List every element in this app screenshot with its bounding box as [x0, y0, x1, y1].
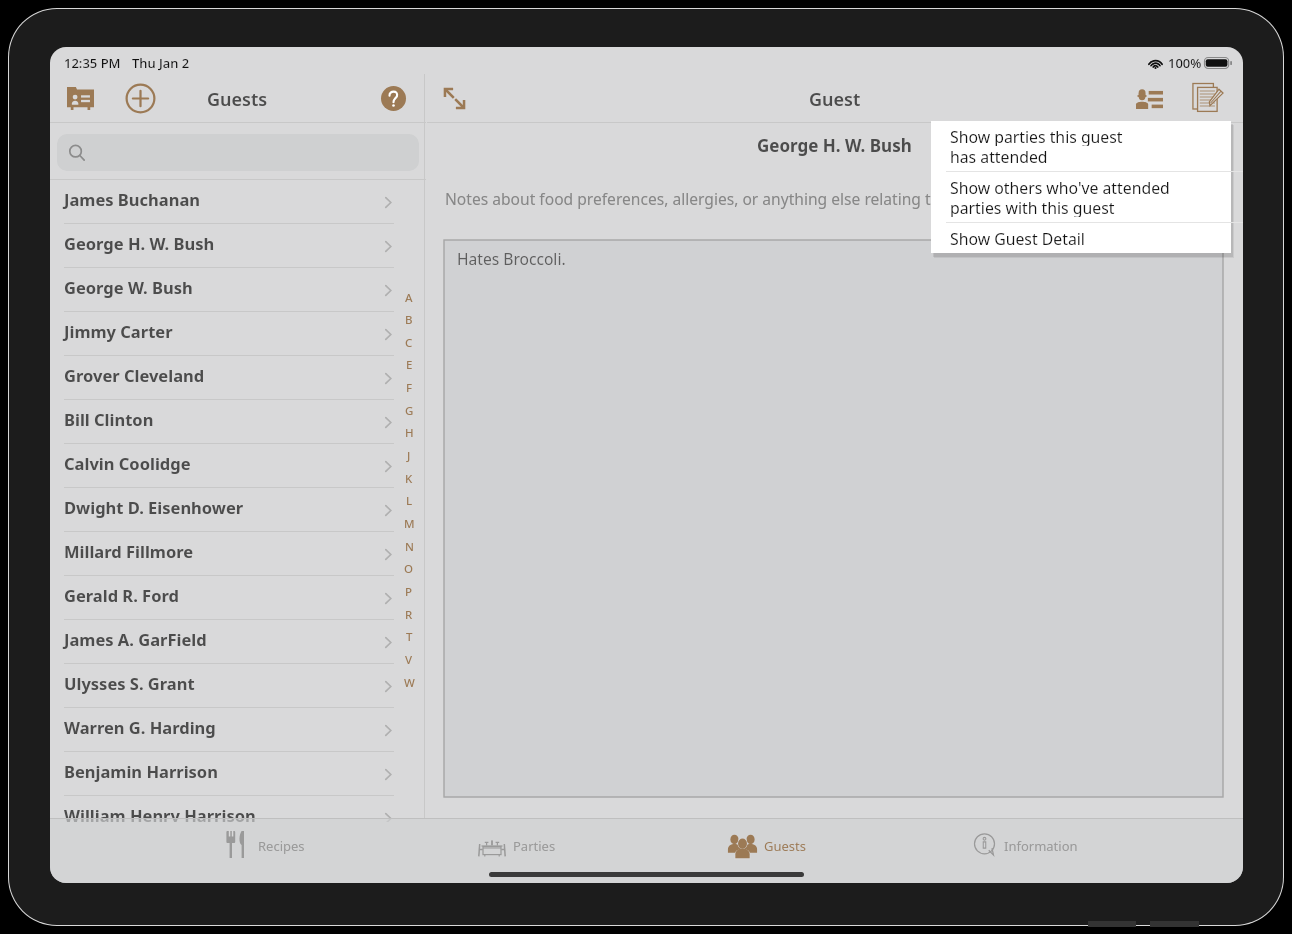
- staticText: Calvin Coolidge: [64, 452, 191, 474]
- button[interactable]: Show parties this guest: [931, 121, 1231, 171]
- button[interactable]: O: [400, 558, 418, 580]
- staticText: Guests: [764, 837, 806, 855]
- staticText: M: [404, 516, 415, 532]
- staticText: G: [405, 403, 414, 419]
- staticText: K: [405, 471, 413, 487]
- button[interactable]: Recipes: [226, 827, 305, 863]
- staticText: Notes about food preferences, allergies,…: [445, 188, 1021, 209]
- staticText: W: [404, 675, 415, 691]
- button[interactable]: R: [400, 604, 418, 626]
- button[interactable]: Search: [57, 134, 419, 171]
- staticText: N: [405, 539, 414, 555]
- staticText: Warren G. Harding: [64, 716, 216, 738]
- staticText: George H. W. Bush: [757, 134, 912, 157]
- button[interactable]: T: [400, 626, 418, 648]
- staticText: Gerald R. Ford: [64, 584, 179, 606]
- staticText: Guests: [207, 87, 268, 112]
- button[interactable]: J: [400, 445, 418, 467]
- staticText: Bill Clinton: [64, 408, 154, 430]
- staticText: Hates Broccoli.: [457, 248, 566, 269]
- staticText: parties with this guest: [950, 197, 1115, 217]
- staticText: James Buchanan: [64, 188, 201, 210]
- button[interactable]: L: [400, 490, 418, 512]
- button[interactable]: Show Guest Detail: [931, 223, 1231, 253]
- button[interactable]: Grover Cleveland: [50, 356, 426, 400]
- button[interactable]: B: [400, 309, 418, 331]
- button[interactable]: James Buchanan: [50, 180, 426, 224]
- button[interactable]: Contacts: [62, 82, 98, 114]
- staticText: H: [405, 425, 414, 441]
- staticText: Dwight D. Eisenhower: [64, 496, 244, 518]
- button[interactable]: A: [400, 287, 418, 309]
- button[interactable]: C: [400, 332, 418, 354]
- staticText: F: [406, 380, 413, 396]
- staticText: William Henry Harrison: [64, 804, 256, 822]
- staticText: O: [404, 561, 414, 577]
- button[interactable]: Millard Fillmore: [50, 532, 426, 576]
- button[interactable]: George H. W. Bush: [50, 224, 426, 268]
- staticText: 12:35 PM: [64, 54, 121, 72]
- button[interactable]: Dwight D. Eisenhower: [50, 488, 426, 532]
- button[interactable]: Add guest: [122, 80, 158, 116]
- staticText: 100%: [1168, 54, 1202, 72]
- button[interactable]: George W. Bush: [50, 268, 426, 312]
- staticText: Parties: [513, 837, 556, 855]
- staticText: L: [406, 493, 413, 509]
- staticText: Recipes: [258, 837, 305, 855]
- staticText: George W. Bush: [64, 276, 193, 298]
- button[interactable]: G: [400, 400, 418, 422]
- button[interactable]: Show others who've attended: [931, 172, 1231, 222]
- staticText: J: [407, 448, 411, 464]
- staticText: T: [406, 629, 413, 645]
- staticText: Millard Fillmore: [64, 540, 194, 562]
- button[interactable]: Jimmy Carter: [50, 312, 426, 356]
- button[interactable]: Benjamin Harrison: [50, 752, 426, 796]
- staticText: Thu Jan 2: [132, 54, 190, 72]
- button[interactable]: Guest info: [1131, 83, 1168, 113]
- staticText: Information: [1004, 837, 1078, 855]
- staticText: has attended: [950, 146, 1048, 166]
- staticText: B: [405, 312, 413, 328]
- button[interactable]: K: [400, 468, 418, 490]
- button[interactable]: Guests: [727, 827, 806, 863]
- staticText: A: [405, 290, 413, 306]
- button[interactable]: Parties: [477, 827, 556, 863]
- staticText: Show Guest Detail: [950, 228, 1085, 248]
- button[interactable]: Help: [377, 82, 409, 114]
- staticText: Benjamin Harrison: [64, 760, 218, 782]
- staticText: George H. W. Bush: [64, 232, 215, 254]
- staticText: Show others who've attended: [950, 177, 1170, 197]
- staticText: Jimmy Carter: [64, 320, 173, 342]
- button[interactable]: M: [400, 513, 418, 535]
- staticText: James A. GarField: [64, 628, 207, 650]
- staticText: Ulysses S. Grant: [64, 672, 195, 694]
- staticText: Show parties this guest: [950, 126, 1123, 146]
- button[interactable]: James A. GarField: [50, 620, 426, 664]
- button[interactable]: Gerald R. Ford: [50, 576, 426, 620]
- button[interactable]: Information: [973, 827, 1078, 863]
- staticText: Grover Cleveland: [64, 364, 205, 386]
- staticText: R: [405, 607, 413, 623]
- staticText: C: [405, 335, 413, 351]
- button[interactable]: Warren G. Harding: [50, 708, 426, 752]
- button[interactable]: Ulysses S. Grant: [50, 664, 426, 708]
- button[interactable]: William Henry Harrison: [50, 796, 426, 822]
- button[interactable]: Expand: [438, 82, 470, 114]
- button[interactable]: F: [400, 377, 418, 399]
- staticText: E: [406, 357, 413, 373]
- button[interactable]: Calvin Coolidge: [50, 444, 426, 488]
- button[interactable]: H: [400, 422, 418, 444]
- staticText: Guest: [809, 87, 861, 112]
- button[interactable]: E: [400, 354, 418, 376]
- button[interactable]: Edit notes: [1188, 79, 1226, 115]
- button[interactable]: V: [400, 649, 418, 671]
- staticText: V: [405, 652, 413, 668]
- staticText: P: [405, 584, 413, 600]
- button[interactable]: Bill Clinton: [50, 400, 426, 444]
- button[interactable]: N: [400, 536, 418, 558]
- button[interactable]: P: [400, 581, 418, 603]
- button[interactable]: W: [400, 672, 418, 694]
